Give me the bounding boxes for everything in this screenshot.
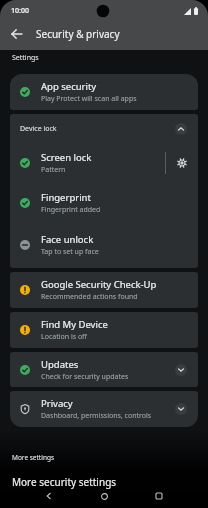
staticText: Dashboard, permissions, controls: [41, 411, 152, 421]
button[interactable]: [42, 489, 56, 503]
button[interactable]: [8, 25, 26, 43]
button[interactable]: [175, 123, 187, 135]
button[interactable]: Screen lock: [10, 144, 198, 182]
staticText: Device lock: [20, 124, 57, 134]
staticText: Screen lock: [41, 151, 92, 164]
staticText: Privacy: [41, 397, 73, 410]
button[interactable]: Fingerprint: [10, 182, 198, 224]
staticText: App security: [41, 80, 97, 93]
staticText: 10:00: [11, 6, 29, 16]
staticText: Face unlock: [41, 233, 94, 246]
button[interactable]: [175, 364, 187, 376]
button[interactable]: Privacy: [10, 391, 198, 427]
button[interactable]: [152, 489, 166, 503]
button[interactable]: [97, 489, 111, 503]
staticText: Google Security Check-Up: [41, 278, 157, 291]
button[interactable]: [175, 403, 187, 415]
staticText: Updates: [41, 358, 79, 371]
button[interactable]: Find My Device: [10, 312, 198, 348]
staticText: Play Protect will scan all apps: [41, 94, 137, 104]
staticText: Recommended actions found: [41, 292, 138, 302]
staticText: Security & privacy: [36, 27, 120, 41]
staticText: Pattern: [41, 165, 66, 175]
staticText: Location is off: [41, 332, 87, 342]
button[interactable]: Face unlock: [10, 224, 198, 266]
button[interactable]: Google Security Check-Up: [10, 272, 198, 308]
staticText: Settings: [12, 53, 39, 63]
button[interactable]: App security: [10, 74, 198, 110]
staticText: Check for security updates: [41, 372, 129, 382]
button[interactable]: Updates: [10, 352, 198, 387]
staticText: More settings: [12, 453, 55, 462]
button[interactable]: [166, 144, 198, 182]
staticText: Tap to set up face: [41, 247, 99, 257]
staticText: More security settings: [12, 475, 117, 489]
staticText: Find My Device: [41, 318, 108, 331]
staticText: Fingerprint: [41, 191, 91, 204]
staticText: Fingerprint added: [41, 205, 101, 215]
